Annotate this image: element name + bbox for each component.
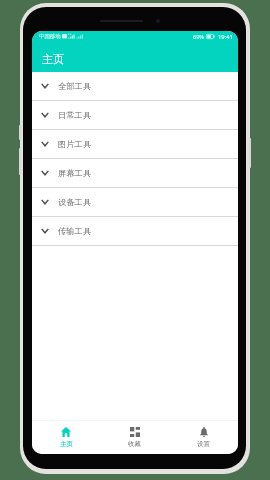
staticText: 主页 [42,52,64,66]
staticText: 日常工具 [58,110,92,120]
staticText: 全部工具 [58,81,92,91]
button[interactable]: 图片工具 [32,130,238,159]
staticText: 图片工具 [58,139,92,149]
button[interactable]: 全部工具 [32,72,238,101]
button[interactable]: Settings [169,421,238,454]
staticText: 主页 [60,440,73,448]
button[interactable]: Home [32,421,100,454]
button[interactable]: Favorites [100,421,169,454]
staticText: 19:41 [218,33,233,41]
button[interactable]: 屏幕工具 [32,159,238,188]
button[interactable]: 日常工具 [32,101,238,130]
staticText: 收藏 [128,440,141,448]
staticText: 传输工具 [58,226,92,236]
button[interactable]: 传输工具 [32,217,238,246]
staticText: 设置 [197,440,210,448]
staticText: 设备工具 [58,197,92,207]
button[interactable]: 设备工具 [32,188,238,217]
staticText: 69% [193,33,204,40]
staticText: 中国移动 [39,33,61,40]
staticText: 屏幕工具 [58,168,92,178]
